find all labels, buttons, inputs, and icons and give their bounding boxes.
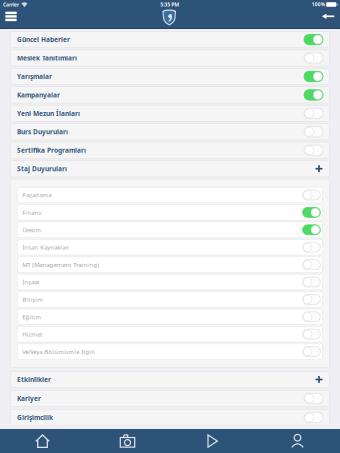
button[interactable]: Kariyer	[10, 390, 329, 407]
button[interactable]: Burs Duyuruları	[10, 124, 329, 140]
staticText: Ve/Veya Bölümümle İlgili	[22, 347, 95, 356]
button[interactable]: Etkinlikler	[10, 371, 329, 388]
staticText: Kampanyalar	[17, 90, 60, 99]
button[interactable]: Güncel Haberler	[10, 31, 329, 48]
button[interactable]: Yarışmalar	[10, 68, 329, 85]
staticText: Eğitim	[22, 313, 41, 321]
staticText: Girişimcilik	[17, 413, 53, 422]
staticText: Burs Duyuruları	[17, 127, 68, 136]
button[interactable]: Meslek Tanıtımları	[10, 50, 329, 66]
staticText: Pazarlama	[22, 191, 51, 199]
button[interactable]: Finans	[17, 205, 323, 220]
button[interactable]: Bilişim	[17, 292, 323, 307]
staticText: Üretim	[22, 226, 41, 234]
button[interactable]: Profile	[255, 429, 340, 453]
staticText: Finans	[22, 208, 41, 216]
staticText: Hizmet	[22, 330, 42, 338]
button[interactable]: Üretim	[17, 222, 323, 238]
button[interactable]: Camera	[85, 429, 170, 453]
staticText: Yarışmalar	[17, 72, 52, 81]
staticText: Meslek Tanıtımları	[17, 54, 77, 62]
button[interactable]: Eğitim	[17, 309, 323, 325]
button[interactable]: Home	[0, 429, 85, 453]
staticText: MT (Management Training)	[22, 260, 99, 269]
staticText: Güncel Haberler	[17, 35, 70, 44]
button[interactable]: Kampanyalar	[10, 87, 329, 103]
button[interactable]: Hizmet	[17, 326, 323, 342]
staticText: İnsan Kaynakları	[22, 243, 69, 251]
staticText: Sertifika Programları	[17, 146, 86, 155]
staticText: Yeni Mezun İlanları	[17, 109, 80, 118]
staticText: 100%	[312, 1, 325, 8]
button[interactable]: Videos	[170, 429, 255, 453]
button[interactable]: Staj Duyuruları	[10, 161, 329, 177]
button[interactable]: MT (Management Training)	[17, 257, 323, 272]
staticText: İnşaat	[22, 278, 39, 286]
staticText: Carrier	[3, 1, 19, 8]
button[interactable]: İnşaat	[17, 274, 323, 290]
staticText: Staj Duyuruları	[17, 164, 67, 173]
button[interactable]: Menu	[0, 9, 22, 28]
staticText: Etkinlikler	[17, 375, 51, 384]
button[interactable]: Back	[317, 9, 340, 28]
button[interactable]: Yeni Mezun İlanları	[10, 105, 329, 121]
button[interactable]: İnsan Kaynakları	[17, 239, 323, 255]
staticText: Bilişim	[22, 295, 43, 303]
button[interactable]: Pazarlama	[17, 187, 323, 203]
button[interactable]: Sertifika Programları	[10, 142, 329, 158]
button[interactable]: Ve/Veya Bölümümle İlgili	[17, 344, 323, 359]
staticText: Kariyer	[17, 394, 41, 403]
staticText: 5:35 PM	[160, 1, 179, 8]
button[interactable]: Girişimcilik	[10, 409, 329, 426]
